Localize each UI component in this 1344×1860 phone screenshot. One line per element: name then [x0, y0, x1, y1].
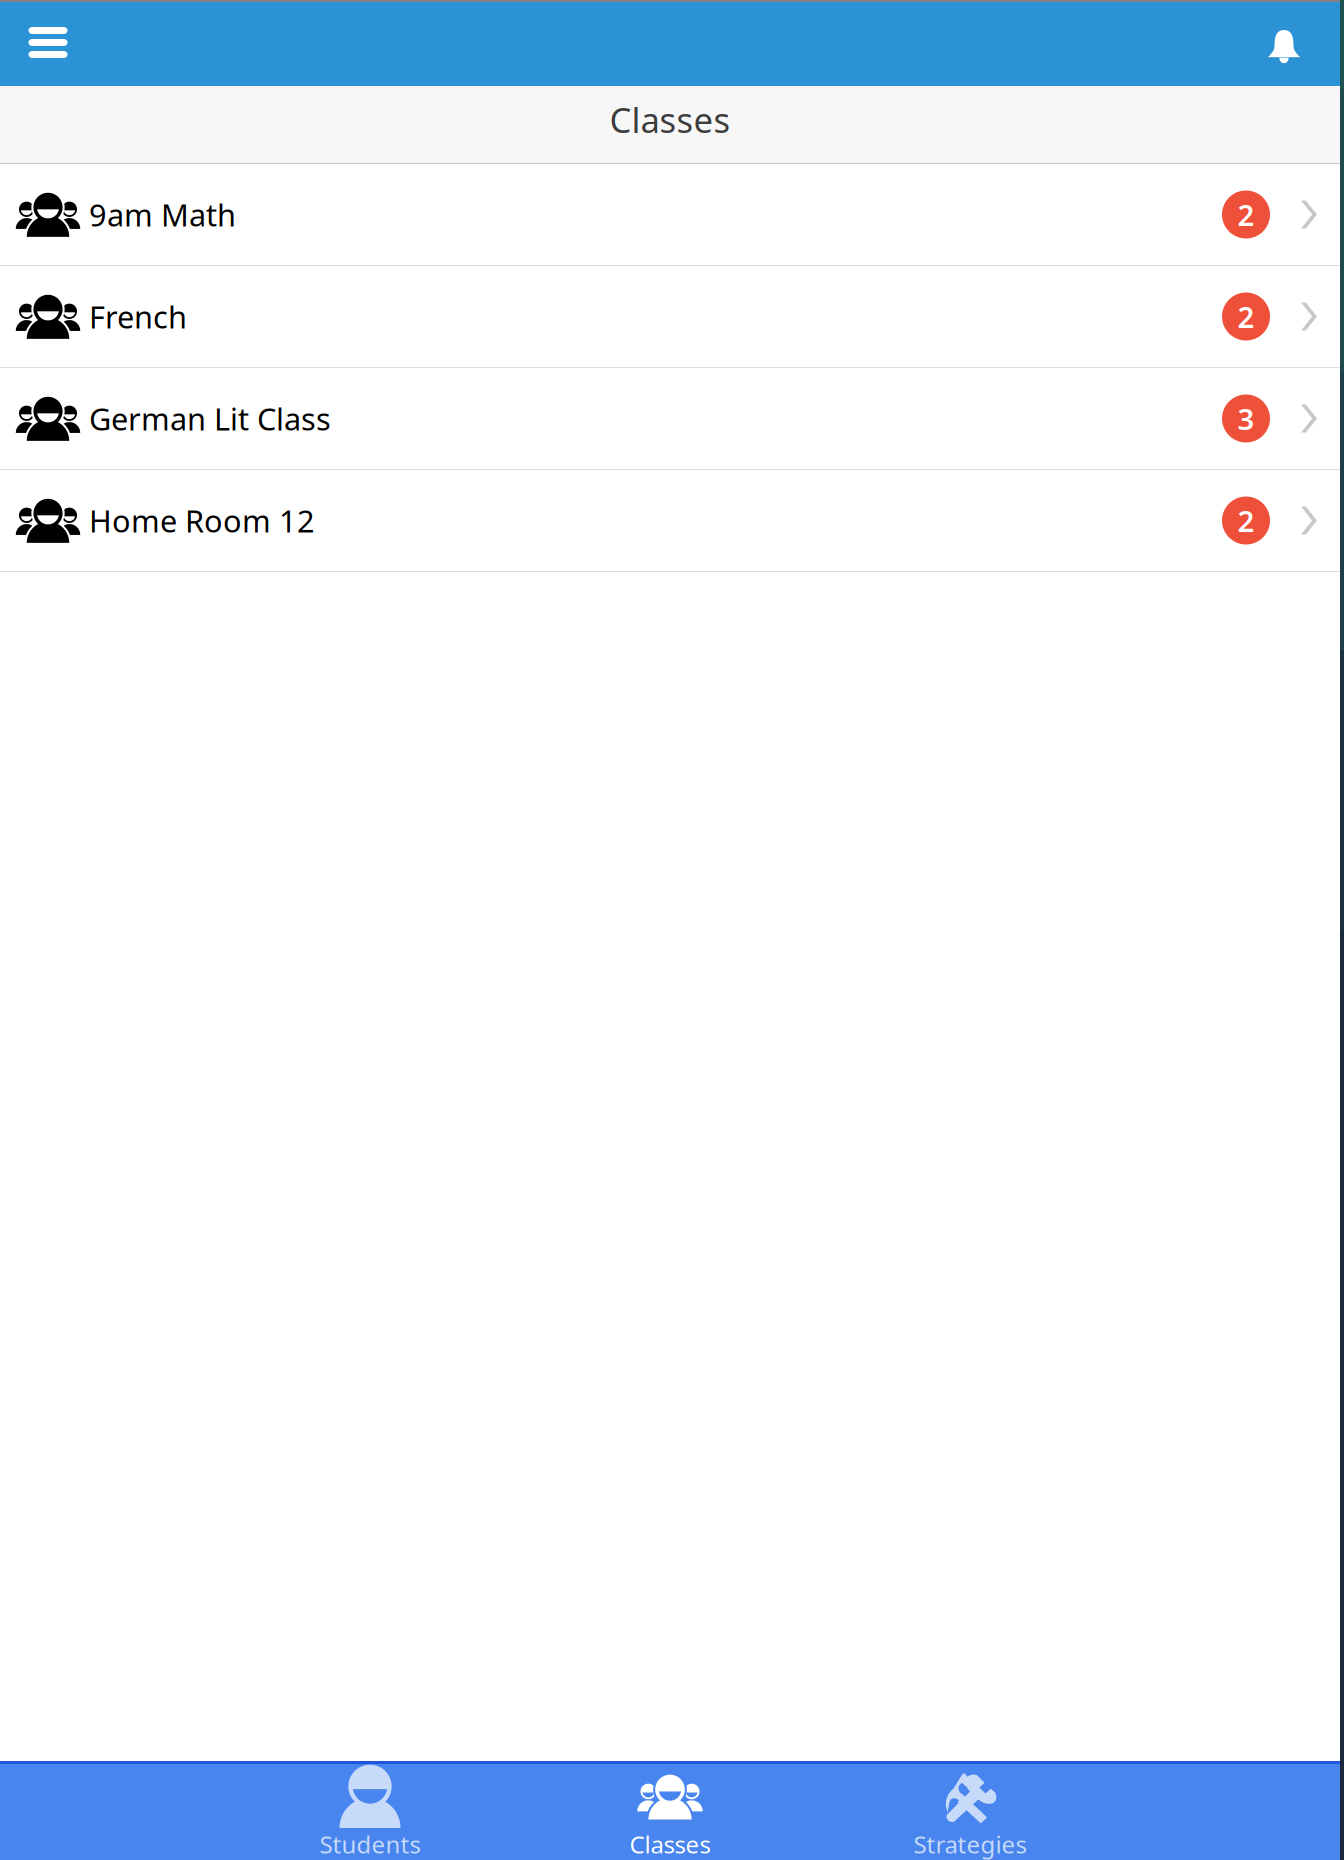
staticText: French	[89, 296, 187, 337]
staticText: German Lit Class	[89, 398, 331, 439]
button[interactable]: Notifications	[1241, 1, 1327, 87]
button[interactable]: German Lit Class	[0, 368, 1340, 469]
staticText: 2	[1237, 297, 1254, 336]
staticText: Strategies	[913, 1828, 1026, 1860]
button[interactable]: French	[0, 266, 1340, 367]
staticText: 3	[1237, 399, 1254, 438]
button[interactable]: Menu	[5, 1, 91, 87]
staticText: 2	[1237, 501, 1254, 540]
staticText: Home Room 12	[89, 500, 315, 541]
staticText: Classes	[609, 96, 730, 142]
button[interactable]: Home Room 12	[0, 470, 1340, 571]
button[interactable]: 9am Math	[0, 164, 1340, 265]
staticText: Students	[319, 1828, 420, 1860]
button[interactable]: Strategies	[820, 1764, 1120, 1860]
staticText: Classes	[629, 1828, 710, 1860]
staticText: 9am Math	[89, 194, 236, 235]
button[interactable]: Classes	[520, 1764, 820, 1860]
button[interactable]: Students	[220, 1764, 520, 1860]
staticText: 2	[1237, 195, 1254, 234]
